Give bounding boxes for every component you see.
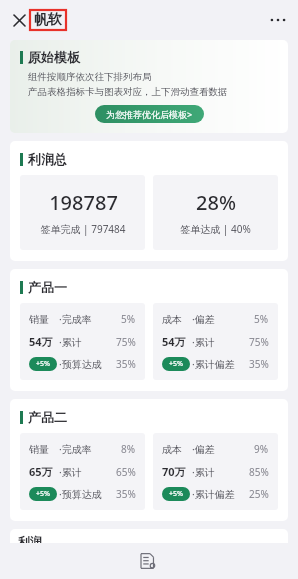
staticText: 25% bbox=[249, 487, 269, 501]
button[interactable]: 帆软 bbox=[34, 11, 62, 29]
staticText: 为您推荐优化后模板> bbox=[106, 108, 193, 120]
staticText: +5% bbox=[36, 359, 50, 369]
staticText: 75% bbox=[249, 335, 269, 349]
staticText: ·预算达成 bbox=[59, 357, 116, 371]
staticText: 产品表格指标卡与图表对应，上下滑动查看数据 bbox=[28, 86, 228, 98]
staticText: 签单达成 | 40% bbox=[180, 222, 251, 236]
staticText: ·累计 bbox=[59, 335, 116, 349]
staticText: 70万 bbox=[162, 464, 192, 479]
button[interactable]: 成本 bbox=[153, 303, 278, 380]
staticText: 成本 bbox=[162, 443, 192, 456]
button[interactable]: Report bbox=[134, 546, 164, 576]
staticText: ·偏差 bbox=[192, 312, 254, 326]
staticText: 原始模板 bbox=[28, 49, 80, 65]
staticText: 35% bbox=[249, 357, 269, 371]
staticText: 5% bbox=[254, 312, 269, 326]
staticText: 54万 bbox=[162, 334, 192, 349]
button[interactable]: Close bbox=[6, 7, 32, 33]
staticText: ·累计偏差 bbox=[192, 357, 249, 371]
staticText: 成本 bbox=[162, 313, 192, 326]
button[interactable]: 28% bbox=[153, 175, 278, 250]
staticText: 75% bbox=[116, 335, 136, 349]
staticText: 35% bbox=[116, 357, 136, 371]
button[interactable]: 成本 bbox=[153, 433, 278, 510]
staticText: ·预算达成 bbox=[59, 487, 116, 501]
staticText: 65% bbox=[116, 465, 136, 479]
staticText: 35% bbox=[116, 487, 136, 501]
staticText: 65万 bbox=[29, 464, 59, 479]
button[interactable]: 为您推荐优化后模板> bbox=[95, 105, 204, 123]
button[interactable]: More options bbox=[264, 6, 292, 34]
staticText: ·完成率 bbox=[59, 442, 121, 456]
staticText: ·偏差 bbox=[192, 442, 254, 456]
staticText: ·累计 bbox=[59, 465, 116, 479]
staticText: ·累计 bbox=[192, 465, 249, 479]
staticText: 28% bbox=[196, 189, 236, 216]
staticText: ·累计 bbox=[192, 335, 249, 349]
staticText: +5% bbox=[169, 359, 183, 369]
staticText: ·完成率 bbox=[59, 312, 121, 326]
staticText: +5% bbox=[169, 489, 183, 499]
staticText: 9% bbox=[254, 442, 269, 456]
staticText: 8% bbox=[121, 442, 136, 456]
staticText: 销量 bbox=[29, 313, 59, 326]
staticText: 85% bbox=[249, 465, 269, 479]
staticText: 销量 bbox=[29, 443, 59, 456]
staticText: 组件按顺序依次往下排列布局 bbox=[28, 71, 152, 83]
staticText: 198787 bbox=[49, 189, 118, 216]
staticText: 产品二 bbox=[28, 409, 67, 425]
staticText: 5% bbox=[121, 312, 136, 326]
staticText: 54万 bbox=[29, 334, 59, 349]
staticText: 帆软 bbox=[34, 11, 62, 29]
button[interactable]: 销量 bbox=[20, 303, 145, 380]
staticText: 签单完成 | 797484 bbox=[40, 222, 126, 236]
staticText: +5% bbox=[36, 489, 50, 499]
staticText: 产品一 bbox=[28, 279, 67, 295]
button[interactable]: 销量 bbox=[20, 433, 145, 510]
staticText: ·累计偏差 bbox=[192, 487, 249, 501]
button[interactable]: 198787 bbox=[20, 175, 145, 250]
staticText: 利润 bbox=[18, 534, 42, 543]
button[interactable]: 利润 bbox=[10, 529, 288, 543]
staticText: 利润总 bbox=[28, 151, 67, 167]
